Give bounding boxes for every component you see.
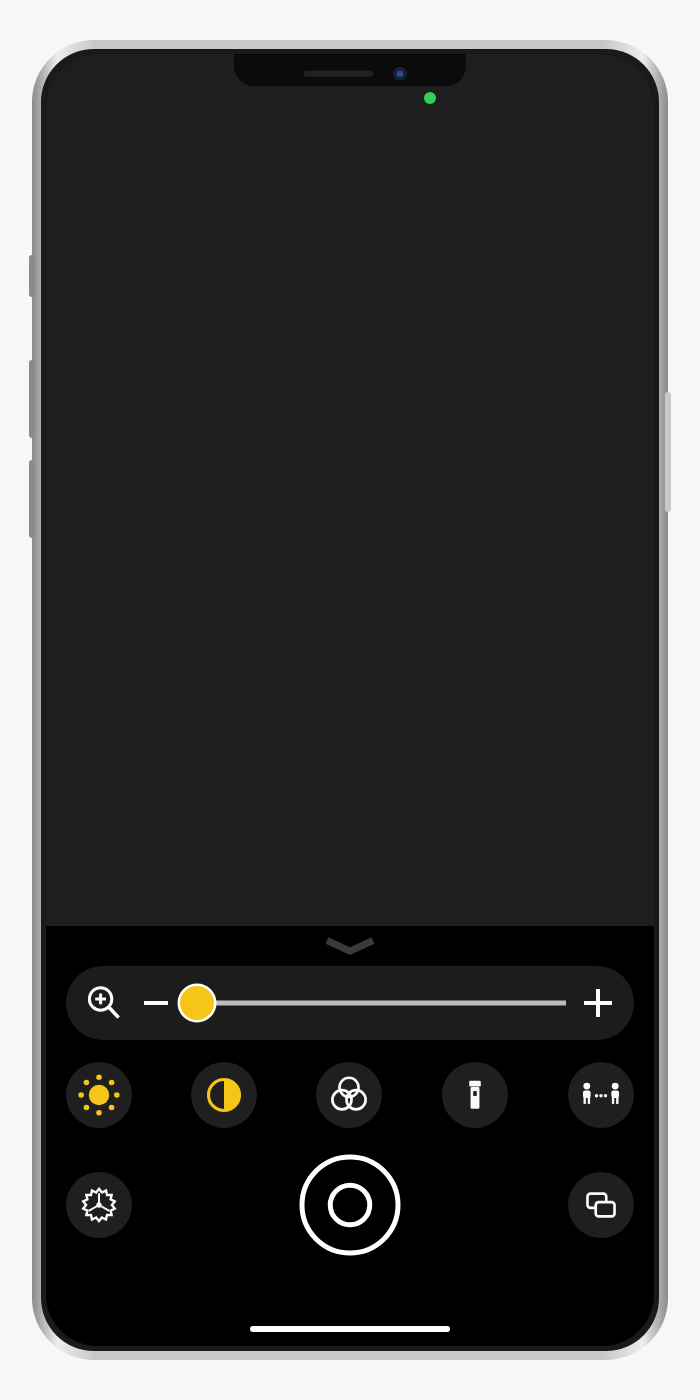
button[interactable]: Freeze frame (298, 1153, 402, 1257)
button[interactable]: Collapse controls (46, 932, 654, 958)
button[interactable]: Zoom level (178, 966, 570, 1040)
button[interactable]: Flashlight (442, 1062, 508, 1128)
button[interactable]: People detection (568, 1062, 634, 1128)
button[interactable]: Zoom in (570, 975, 626, 1031)
button[interactable]: Settings (66, 1172, 132, 1238)
button[interactable]: Brightness (66, 1062, 132, 1128)
button[interactable]: Zoom out (134, 981, 178, 1025)
button[interactable]: Color filters (316, 1062, 382, 1128)
button[interactable]: Contrast (191, 1062, 257, 1128)
button[interactable]: Zoom mode (80, 979, 128, 1027)
button[interactable]: Multiple views (568, 1172, 634, 1238)
